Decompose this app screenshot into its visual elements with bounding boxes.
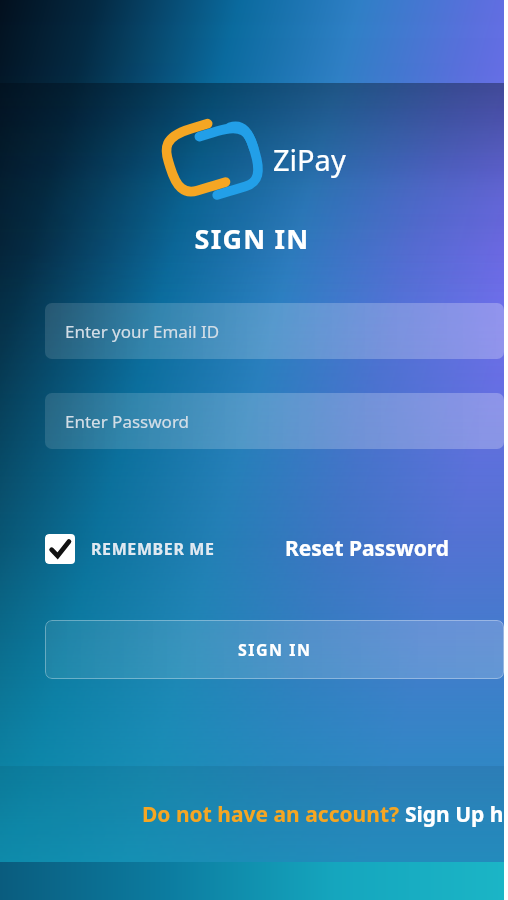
- staticText: Enter Password: [65, 410, 190, 433]
- other: ZiPay logo: [0, 116, 504, 202]
- staticText: ZiPay: [273, 140, 346, 179]
- button[interactable]: SIGN IN: [45, 620, 504, 679]
- button[interactable]: Reset Password: [285, 528, 450, 569]
- button[interactable]: Do not have an account?: [0, 766, 504, 862]
- staticText: Enter your Email ID: [65, 320, 220, 343]
- button[interactable]: Enter your Email ID: [45, 303, 504, 359]
- staticText: REMEMBER ME: [91, 538, 215, 560]
- staticText: Sign Up here: [405, 800, 508, 829]
- button[interactable]: REMEMBER ME: [45, 534, 215, 564]
- staticText: SIGN IN: [0, 220, 504, 257]
- staticText: Do not have an account?: [142, 800, 405, 829]
- button[interactable]: Enter Password: [45, 393, 504, 449]
- staticText: SIGN IN: [238, 639, 312, 661]
